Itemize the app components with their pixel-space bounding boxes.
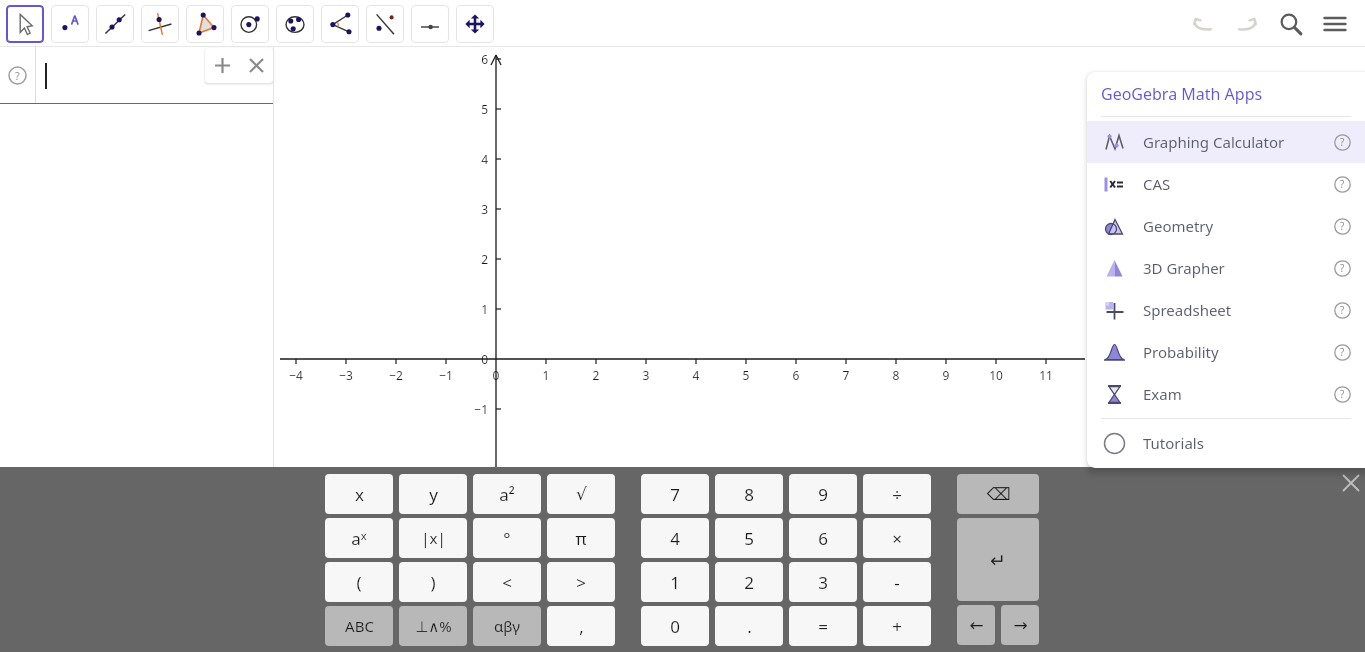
button[interactable]: Search: [1269, 2, 1313, 46]
button[interactable]: CAS: [1087, 163, 1365, 205]
button[interactable]: Help about Graphing Calculator: [1325, 125, 1359, 159]
button[interactable]: 9: [789, 474, 857, 514]
button[interactable]: Help: [0, 66, 35, 85]
button[interactable]: Probability: [1087, 331, 1365, 373]
button[interactable]: Exam: [1087, 373, 1365, 415]
button[interactable]: ×: [863, 518, 931, 558]
button[interactable]: Enter: [957, 518, 1039, 601]
button[interactable]: Backspace: [957, 474, 1039, 514]
staticText: >: [576, 571, 586, 594]
button[interactable]: Graphing Calculator: [1087, 121, 1365, 163]
button[interactable]: |x|: [399, 518, 467, 558]
staticText: 2: [744, 571, 754, 594]
button[interactable]: Help about Geometry: [1325, 209, 1359, 243]
staticText: ←: [969, 615, 984, 635]
staticText: 3: [626, 367, 666, 383]
button[interactable]: Help about Exam: [1325, 377, 1359, 411]
button[interactable]: x: [325, 474, 393, 514]
button[interactable]: ): [399, 562, 467, 602]
button[interactable]: [51, 5, 89, 43]
button[interactable]: ÷: [863, 474, 931, 514]
button[interactable]: √: [547, 474, 615, 514]
staticText: 0: [670, 615, 680, 638]
staticText: −2: [376, 367, 416, 383]
button[interactable]: [231, 5, 269, 43]
button[interactable]: °: [473, 518, 541, 558]
staticText: Probability: [1143, 342, 1219, 362]
button[interactable]: Undo: [1181, 2, 1225, 46]
button[interactable]: .: [715, 606, 783, 646]
button[interactable]: ABC: [325, 606, 393, 646]
button[interactable]: Right: [1001, 605, 1039, 645]
staticText: 5: [744, 527, 754, 550]
button[interactable]: Close keyboard: [1338, 470, 1364, 496]
button[interactable]: [456, 5, 494, 43]
staticText: 4: [450, 151, 488, 167]
button[interactable]: [276, 5, 314, 43]
button[interactable]: ,: [547, 606, 615, 646]
button[interactable]: 3: [789, 562, 857, 602]
staticText: 1: [526, 367, 566, 383]
button[interactable]: >: [547, 562, 615, 602]
staticText: 9: [926, 367, 966, 383]
staticText: CAS: [1143, 174, 1171, 194]
button[interactable]: [141, 5, 179, 43]
button[interactable]: Help about CAS: [1325, 167, 1359, 201]
button[interactable]: a²: [473, 474, 541, 514]
button[interactable]: Add: [205, 57, 239, 74]
button[interactable]: Close: [239, 58, 273, 73]
button[interactable]: [186, 5, 224, 43]
button[interactable]: [366, 5, 404, 43]
staticText: ×: [892, 527, 902, 550]
staticText: Tutorials: [1143, 433, 1204, 453]
button[interactable]: 5: [715, 518, 783, 558]
button[interactable]: Help about Probability: [1325, 335, 1359, 369]
staticText: −1: [450, 401, 488, 417]
staticText: ?: [1340, 135, 1345, 149]
button[interactable]: 3D Grapher: [1087, 247, 1365, 289]
button[interactable]: [6, 5, 44, 43]
button[interactable]: Tutorials: [1087, 422, 1365, 464]
button[interactable]: ⊥∧%: [399, 606, 467, 646]
button[interactable]: Spreadsheet: [1087, 289, 1365, 331]
staticText: aˣ: [351, 527, 367, 550]
staticText: ÷: [892, 483, 902, 506]
staticText: 8: [876, 367, 916, 383]
staticText: −4: [276, 367, 316, 383]
button[interactable]: Geometry: [1087, 205, 1365, 247]
button[interactable]: (: [325, 562, 393, 602]
button[interactable]: [321, 5, 359, 43]
button[interactable]: 7: [641, 474, 709, 514]
button[interactable]: aˣ: [325, 518, 393, 558]
staticText: GeoGebra Math Apps: [1101, 83, 1263, 105]
staticText: 1: [450, 301, 488, 317]
button[interactable]: Menu: [1313, 2, 1357, 46]
button[interactable]: αβγ: [473, 606, 541, 646]
staticText: ?: [1340, 387, 1345, 401]
staticText: ?: [15, 68, 20, 83]
button[interactable]: +: [863, 606, 931, 646]
button[interactable]: Help about 3D Grapher: [1325, 251, 1359, 285]
button[interactable]: 8: [715, 474, 783, 514]
button[interactable]: 6: [789, 518, 857, 558]
button[interactable]: 2: [715, 562, 783, 602]
button[interactable]: -: [863, 562, 931, 602]
button[interactable]: Help about Spreadsheet: [1325, 293, 1359, 327]
staticText: ,: [579, 615, 584, 638]
staticText: 0: [476, 367, 516, 383]
staticText: 3: [450, 201, 488, 217]
button[interactable]: y: [399, 474, 467, 514]
button[interactable]: 0: [641, 606, 709, 646]
button[interactable]: [96, 5, 134, 43]
button[interactable]: 4: [641, 518, 709, 558]
button[interactable]: =: [789, 606, 857, 646]
button[interactable]: <: [473, 562, 541, 602]
button[interactable]: Redo: [1225, 2, 1269, 46]
staticText: 6: [818, 527, 828, 550]
button[interactable]: π: [547, 518, 615, 558]
staticText: 1: [670, 571, 680, 594]
button[interactable]: [411, 5, 449, 43]
staticText: 0: [450, 351, 488, 367]
button[interactable]: 1: [641, 562, 709, 602]
button[interactable]: Left: [957, 605, 995, 645]
